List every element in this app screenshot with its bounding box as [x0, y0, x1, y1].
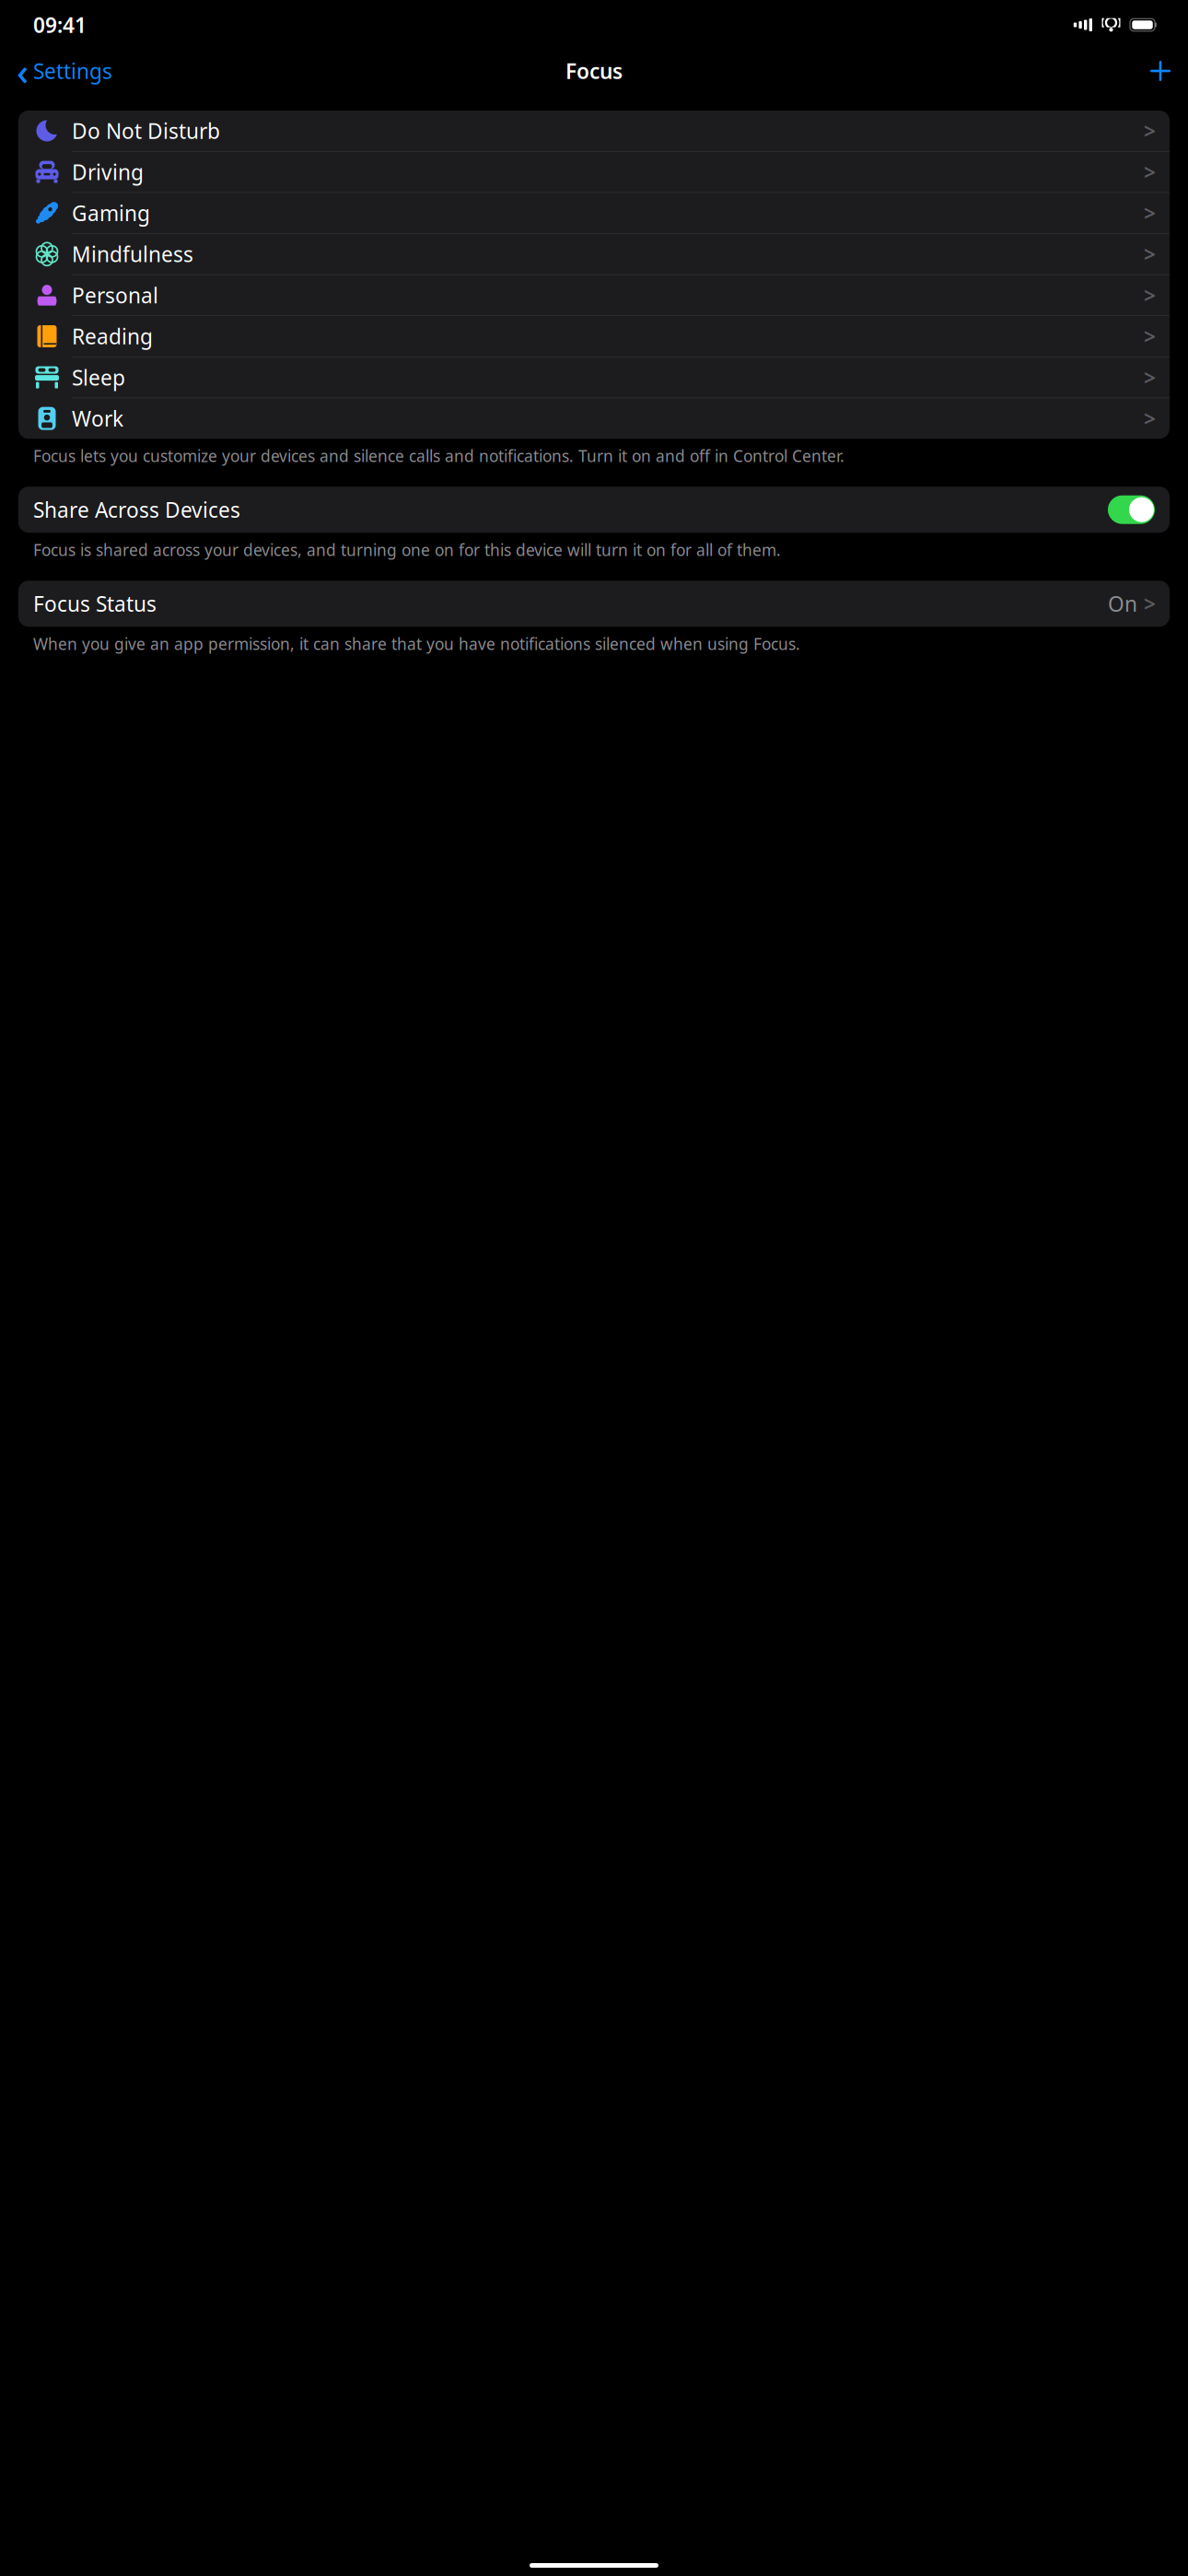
button[interactable]: Do Not Disturb — [18, 111, 1170, 152]
staticText: Share Across Devices — [33, 496, 240, 524]
button[interactable]: Share Across Devices — [18, 487, 1170, 533]
staticText: Driving — [72, 158, 144, 186]
staticText: > — [1144, 322, 1156, 350]
staticText: > — [1144, 240, 1156, 268]
button[interactable]: Driving — [18, 152, 1170, 193]
button[interactable]: ‹ — [7, 51, 122, 91]
staticText: > — [1144, 158, 1156, 186]
button[interactable]: Reading — [18, 316, 1170, 357]
staticText: > — [1144, 117, 1156, 145]
staticText: Focus lets you customize your devices an… — [33, 445, 844, 466]
staticText: Personal — [72, 281, 158, 309]
staticText: Mindfulness — [72, 240, 193, 268]
button[interactable]: Work — [18, 398, 1170, 439]
button[interactable]: Mindfulness — [18, 234, 1170, 275]
button[interactable]: Personal — [18, 275, 1170, 316]
staticText: Reading — [72, 322, 153, 350]
staticText: 09:41 — [33, 11, 87, 39]
staticText: Focus is shared across your devices, and… — [33, 539, 781, 560]
staticText: On — [1108, 590, 1137, 618]
button[interactable]: Add Focus — [1140, 51, 1181, 91]
button[interactable]: Focus Status — [18, 581, 1170, 627]
staticText: > — [1144, 590, 1156, 618]
staticText: Work — [72, 405, 123, 432]
staticText: > — [1144, 199, 1156, 227]
staticText: > — [1144, 363, 1156, 391]
staticText: Sleep — [72, 363, 125, 391]
button[interactable]: Gaming — [18, 193, 1170, 234]
staticText: Settings — [33, 57, 112, 85]
staticText: ‹ — [17, 46, 29, 95]
staticText: When you give an app permission, it can … — [33, 633, 800, 654]
button[interactable]: Sleep — [18, 357, 1170, 398]
staticText: > — [1144, 405, 1156, 432]
staticText: Focus Status — [33, 590, 157, 618]
staticText: Focus — [565, 57, 623, 85]
staticText: Do Not Disturb — [72, 117, 220, 145]
staticText: > — [1144, 281, 1156, 309]
staticText: Gaming — [72, 199, 150, 227]
